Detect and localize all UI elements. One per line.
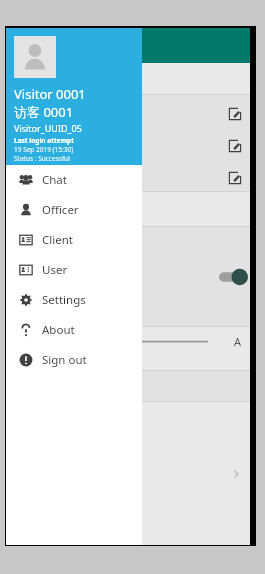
staticText: Sign out [42,352,87,368]
button[interactable]: Edit [228,139,242,153]
staticText: Settings [42,292,86,308]
button[interactable]: Edit [228,171,242,185]
button[interactable]: User [6,255,142,285]
button[interactable]: hoto [6,402,250,545]
staticText: 19 Sep 2019 (15:30) [14,145,74,154]
staticText: Client [42,232,73,248]
button[interactable]: About [6,315,142,345]
staticText: Last login attempt [14,136,74,145]
button[interactable]: Settings [6,285,142,315]
button[interactable]: Client [6,225,142,255]
button[interactable]: Sign out [6,345,142,375]
staticText: 访客 0001 [14,103,74,121]
staticText: Officer [42,202,79,218]
staticText: User [42,262,68,278]
button[interactable]: Toggle [219,268,247,286]
staticText: Status : Successful [14,154,70,163]
staticText: Chat [42,172,67,188]
staticText: Visitor_UUID_05 [14,122,82,134]
staticText: Visitor 0001 [14,85,86,103]
staticText: A [234,334,242,349]
button[interactable]: Chat [6,165,142,195]
button[interactable]: Officer [6,195,142,225]
staticText: About [42,322,75,338]
button[interactable]: Edit [228,107,242,121]
